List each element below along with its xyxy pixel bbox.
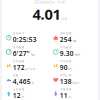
staticText: 9.30: [60, 49, 74, 58]
staticText: 公里: [61, 17, 67, 20]
staticText: 11: [60, 91, 68, 100]
button[interactable]: 上升高度: [6, 88, 53, 100]
staticText: 4.01: [32, 4, 60, 24]
staticText: cm: [68, 67, 71, 71]
staticText: 运动时长: [13, 32, 25, 35]
staticText: 步/分钟: [25, 67, 35, 71]
staticText: /km: [30, 53, 34, 57]
staticText: 平均步幅: [60, 60, 72, 63]
staticText: 0:25:53: [13, 35, 37, 44]
staticText: 2023年8月5日 16:41: [34, 1, 66, 4]
staticText: 平均速度: [60, 46, 72, 49]
staticText: 平均心率: [60, 74, 72, 77]
button[interactable]: 平均配速: [6, 46, 53, 58]
staticText: bpm: [72, 81, 78, 85]
staticText: m: [68, 95, 70, 99]
button[interactable]: 下降高度: [53, 88, 100, 100]
staticText: 步数: [13, 74, 19, 77]
staticText: 172: [13, 63, 25, 72]
staticText: m: [21, 95, 23, 99]
staticText: 4,465: [13, 77, 31, 86]
staticText: 138: [60, 77, 72, 86]
staticText: 平均配速: [13, 46, 25, 49]
staticText: 12: [13, 91, 21, 100]
button[interactable]: 平均速度: [53, 46, 100, 58]
staticText: 254: [60, 35, 72, 44]
staticText: 平均步频: [13, 60, 25, 63]
staticText: 下降高度: [60, 88, 72, 91]
button[interactable]: 步数: [6, 74, 53, 86]
staticText: 上升高度: [13, 88, 25, 91]
button[interactable]: 平均步幅: [53, 60, 100, 72]
staticText: kcal: [72, 39, 76, 43]
staticText: 90: [60, 63, 68, 72]
staticText: km/h: [74, 53, 80, 57]
button[interactable]: 运动时长: [6, 32, 53, 44]
button[interactable]: 平均心率: [53, 74, 100, 86]
staticText: 消耗热量: [60, 32, 72, 35]
staticText: 步: [31, 81, 34, 85]
button[interactable]: 平均步频: [6, 60, 53, 72]
button[interactable]: 消耗热量: [53, 32, 100, 44]
staticText: 6'27": [13, 49, 30, 58]
